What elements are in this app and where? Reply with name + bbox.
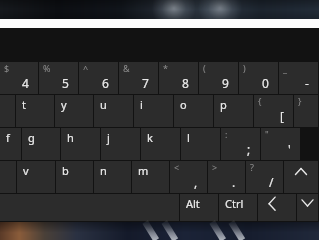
staticText: 5 [62,75,69,91]
button[interactable]: _ [279,62,318,94]
staticText: 7 [142,75,149,91]
staticText: 8 [182,75,189,91]
staticText: { [258,95,262,107]
button[interactable]: < [170,161,207,193]
staticText: [ [280,108,284,124]
staticText: " [265,128,269,140]
staticText: 0 [262,75,269,91]
staticText: k [147,130,153,145]
staticText: . [232,174,236,190]
button[interactable]: o [174,95,213,127]
button[interactable]: g [22,128,60,160]
staticText: % [43,62,51,74]
button[interactable]: u [94,95,133,127]
staticText: t [22,97,26,112]
button[interactable]: n [94,161,131,193]
staticText: o [180,97,187,112]
button[interactable]: v [17,161,55,193]
staticText: Alt [186,196,200,211]
staticText: $ [4,62,10,74]
staticText: 6 [102,75,109,91]
button[interactable]: } [294,95,318,127]
staticText: v [23,163,29,178]
staticText: l [187,130,190,145]
staticText: ) [243,62,246,74]
staticText: m [138,163,149,178]
staticText: Ctrl [225,196,244,211]
staticText: u [100,97,107,112]
button[interactable]: Hide keyboard [297,194,318,221]
button[interactable]: ? [246,161,283,193]
staticText: j [107,130,110,145]
staticText: _ [283,62,287,74]
button[interactable]: ( [199,62,238,94]
button[interactable]: $ [0,62,38,94]
staticText: - [305,75,309,91]
button[interactable]: ) [239,62,278,94]
staticText: 4 [22,75,29,91]
staticText: h [67,130,74,145]
button[interactable]: > [208,161,245,193]
staticText: p [220,97,227,112]
staticText: 9 [222,75,229,91]
staticText: f [6,130,10,145]
button[interactable]: Shift [284,161,318,193]
button[interactable]: Ctrl [219,194,257,221]
staticText: ? [250,161,254,173]
button[interactable]: & [119,62,158,94]
button[interactable]: Backspace [258,194,296,221]
staticText: i [140,97,143,112]
staticText: ( [203,62,206,74]
button[interactable]: % [39,62,78,94]
button[interactable]: h [61,128,100,160]
button[interactable]: f [0,128,21,160]
staticText: < [174,161,180,173]
button[interactable]: " [261,128,300,160]
staticText: ; [247,141,251,157]
button[interactable]: Alt [180,194,218,221]
staticText: & [123,62,130,74]
staticText: ^ [83,62,89,74]
staticText: , [194,174,198,190]
staticText: ' [288,141,291,157]
staticText: n [100,163,107,178]
button[interactable]: * [159,62,198,94]
button[interactable]: ^ [79,62,118,94]
button[interactable]: i [134,95,173,127]
staticText: y [61,97,67,112]
staticText: * [163,62,168,74]
button[interactable]: b [56,161,93,193]
button[interactable]: t [16,95,54,127]
staticText: : [225,128,228,140]
staticText: g [28,130,35,145]
button[interactable]: k [141,128,180,160]
button[interactable]: l [181,128,220,160]
staticText: } [298,95,302,107]
button[interactable]: { [254,95,293,127]
staticText: b [62,163,69,178]
button[interactable]: m [132,161,169,193]
button[interactable]: j [101,128,140,160]
staticText: / [269,174,274,190]
button[interactable]: p [214,95,253,127]
button[interactable]: y [55,95,93,127]
button[interactable]: : [221,128,260,160]
staticText: > [212,161,218,173]
